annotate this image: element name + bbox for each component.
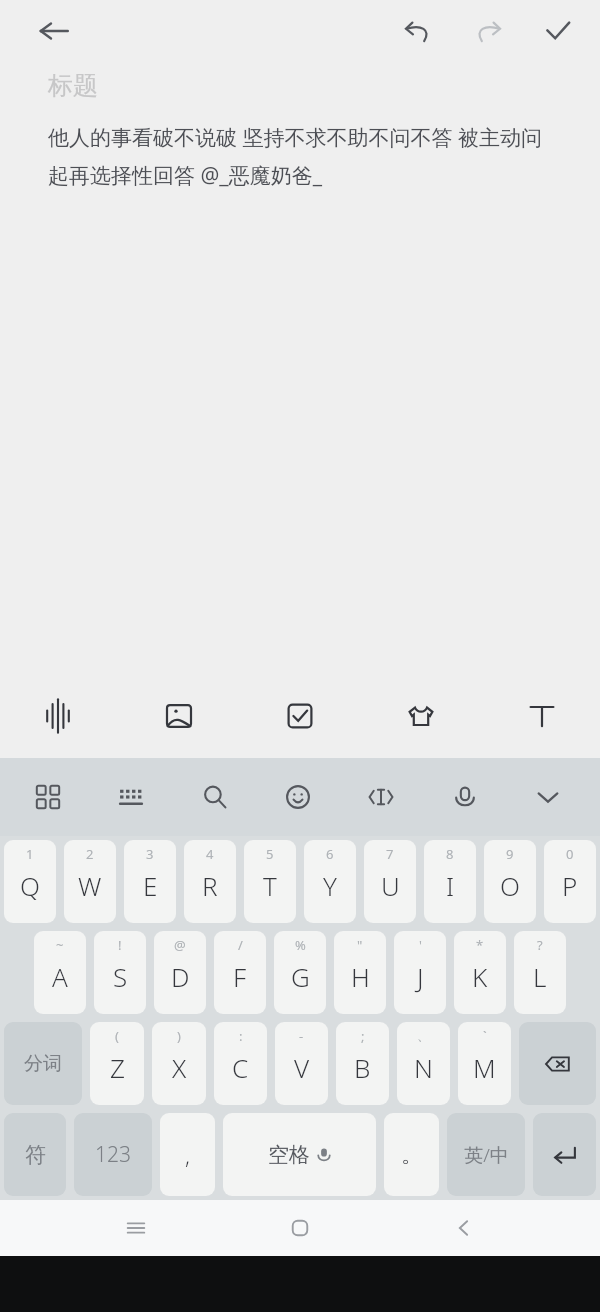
- button[interactable]: Backspace: [519, 1022, 596, 1105]
- staticText: C: [232, 1050, 249, 1085]
- button[interactable]: Save: [534, 7, 582, 55]
- button[interactable]: K: [454, 931, 506, 1014]
- button[interactable]: X: [152, 1022, 206, 1105]
- staticText: M: [473, 1050, 496, 1085]
- staticText: Q: [20, 868, 40, 903]
- staticText: 2: [86, 845, 94, 863]
- button[interactable]: Redo: [464, 7, 512, 55]
- button[interactable]: Enter: [533, 1113, 596, 1196]
- staticText: O: [500, 868, 520, 903]
- button[interactable]: Insert image: [151, 688, 207, 744]
- staticText: S: [113, 959, 128, 994]
- staticText: ): [177, 1027, 181, 1045]
- button[interactable]: Hide keyboard: [522, 771, 574, 823]
- button[interactable]: P: [544, 840, 596, 923]
- button[interactable]: W: [64, 840, 116, 923]
- button[interactable]: 空格: [223, 1113, 376, 1196]
- button[interactable]: O: [484, 840, 536, 923]
- staticText: N: [414, 1050, 433, 1085]
- staticText: 分词: [24, 1052, 62, 1076]
- button[interactable]: T: [244, 840, 296, 923]
- button[interactable]: C: [214, 1022, 267, 1105]
- button[interactable]: Undo: [394, 7, 442, 55]
- button[interactable]: 分词: [4, 1022, 82, 1105]
- button[interactable]: Home: [272, 1200, 328, 1256]
- staticText: ~: [56, 936, 64, 954]
- button[interactable]: M: [458, 1022, 511, 1105]
- button[interactable]: Keyboard layout: [105, 771, 157, 823]
- staticText: I: [446, 868, 455, 903]
- button[interactable]: Search: [189, 771, 241, 823]
- button[interactable]: D: [154, 931, 206, 1014]
- button[interactable]: E: [124, 840, 176, 923]
- button[interactable]: L: [514, 931, 566, 1014]
- button[interactable]: Move cursor: [355, 771, 407, 823]
- button[interactable]: Voice input: [439, 771, 491, 823]
- staticText: T: [263, 868, 277, 903]
- button[interactable]: Apps: [22, 771, 74, 823]
- button[interactable]: 标题: [0, 62, 600, 674]
- button[interactable]: J: [394, 931, 446, 1014]
- staticText: A: [52, 959, 68, 994]
- button[interactable]: Checklist: [272, 688, 328, 744]
- button[interactable]: 。: [384, 1113, 439, 1196]
- button[interactable]: 英/中: [447, 1113, 525, 1196]
- button[interactable]: N: [397, 1022, 450, 1105]
- staticText: 他人的事看破不说破 坚持不求不助不问不答 被主动问起再选择性回答 @_恶魔奶爸_: [48, 123, 560, 189]
- staticText: 符: [25, 1142, 46, 1168]
- button[interactable]: F: [214, 931, 266, 1014]
- staticText: 空格: [268, 1142, 310, 1168]
- staticText: 3: [146, 845, 154, 863]
- button[interactable]: Text format: [514, 688, 570, 744]
- button[interactable]: Recents: [108, 1200, 164, 1256]
- button[interactable]: A: [34, 931, 86, 1014]
- staticText: %: [295, 936, 306, 954]
- staticText: J: [417, 959, 424, 994]
- button[interactable]: I: [424, 840, 476, 923]
- button[interactable]: Z: [90, 1022, 144, 1105]
- staticText: 0: [566, 845, 574, 863]
- button[interactable]: Emoji: [272, 771, 324, 823]
- staticText: E: [143, 868, 158, 903]
- staticText: *: [476, 936, 484, 954]
- staticText: ?: [537, 936, 543, 954]
- staticText: ': [419, 936, 422, 954]
- staticText: X: [172, 1050, 187, 1085]
- staticText: P: [562, 868, 578, 903]
- button[interactable]: G: [274, 931, 326, 1014]
- staticText: ;: [361, 1027, 365, 1045]
- button[interactable]: ,: [160, 1113, 215, 1196]
- staticText: 、: [417, 1027, 430, 1043]
- staticText: 123: [95, 1140, 131, 1169]
- button[interactable]: Back: [436, 1200, 492, 1256]
- button[interactable]: Style: [393, 688, 449, 744]
- staticText: 9: [506, 845, 514, 863]
- staticText: !: [118, 936, 122, 954]
- button[interactable]: Back: [30, 7, 78, 55]
- staticText: :: [239, 1027, 243, 1045]
- button[interactable]: 123: [74, 1113, 152, 1196]
- staticText: 4: [206, 845, 214, 863]
- button[interactable]: U: [364, 840, 416, 923]
- button[interactable]: 符: [4, 1113, 66, 1196]
- staticText: (: [115, 1027, 119, 1045]
- staticText: -: [299, 1027, 304, 1045]
- button[interactable]: V: [275, 1022, 328, 1105]
- staticText: H: [351, 959, 370, 994]
- button[interactable]: Voice: [30, 688, 86, 744]
- staticText: 6: [326, 845, 334, 863]
- button[interactable]: Y: [304, 840, 356, 923]
- staticText: G: [291, 959, 310, 994]
- staticText: U: [381, 868, 400, 903]
- staticText: V: [294, 1050, 310, 1085]
- staticText: 英/中: [464, 1142, 509, 1168]
- button[interactable]: H: [334, 931, 386, 1014]
- staticText: 标题: [48, 70, 98, 101]
- staticText: `: [483, 1027, 487, 1045]
- button[interactable]: S: [94, 931, 146, 1014]
- staticText: W: [78, 868, 102, 903]
- button[interactable]: Q: [4, 840, 56, 923]
- button[interactable]: R: [184, 840, 236, 923]
- button[interactable]: B: [336, 1022, 389, 1105]
- staticText: F: [233, 959, 247, 994]
